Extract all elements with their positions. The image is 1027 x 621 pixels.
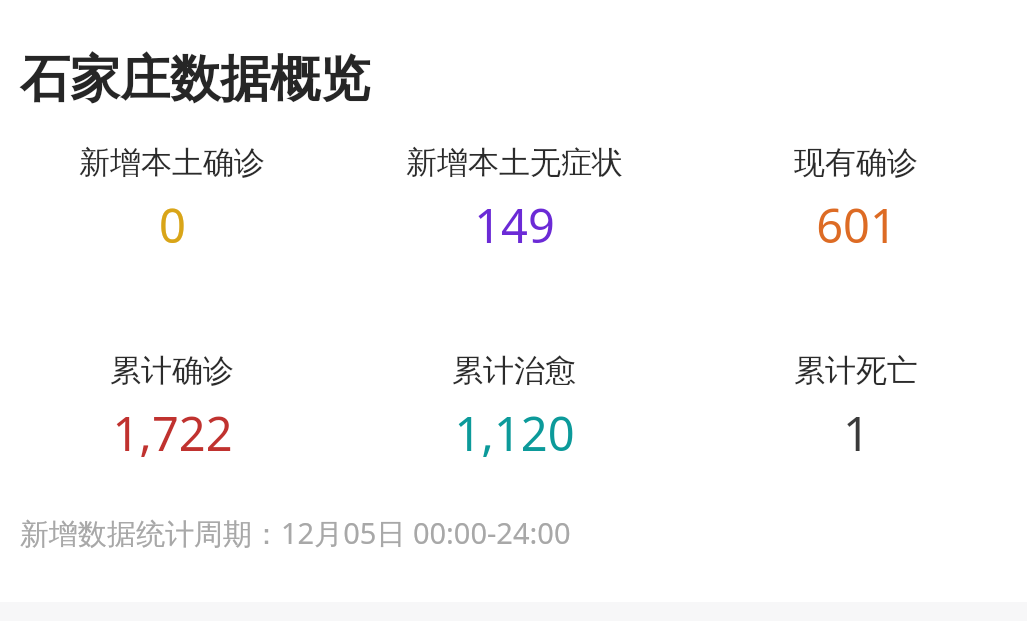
staticText: 新增数据统计周期：12月05日 00:00-24:00 [20, 513, 571, 553]
staticText: 新增本土无症状 [406, 143, 623, 182]
staticText: 现有确诊 [794, 143, 918, 182]
button[interactable]: 新增本土无症状 [406, 143, 623, 257]
staticText: 石家庄数据概览 [20, 48, 370, 111]
staticText: 1 [843, 401, 870, 465]
staticText: 新增本土确诊 [79, 143, 265, 182]
staticText: 0 [159, 193, 186, 257]
button[interactable]: 累计治愈 [452, 351, 576, 465]
button[interactable]: 新增本土确诊 [79, 143, 265, 257]
staticText: 1,722 [112, 401, 233, 465]
staticText: 149 [474, 193, 555, 257]
button[interactable]: 累计确诊 [110, 351, 234, 465]
staticText: 累计治愈 [452, 351, 576, 390]
button[interactable]: 累计死亡 [794, 351, 918, 465]
staticText: 累计死亡 [794, 351, 918, 390]
button[interactable]: 现有确诊 [794, 143, 918, 257]
staticText: 601 [816, 193, 897, 257]
staticText: 累计确诊 [110, 351, 234, 390]
staticText: 1,120 [454, 401, 575, 465]
